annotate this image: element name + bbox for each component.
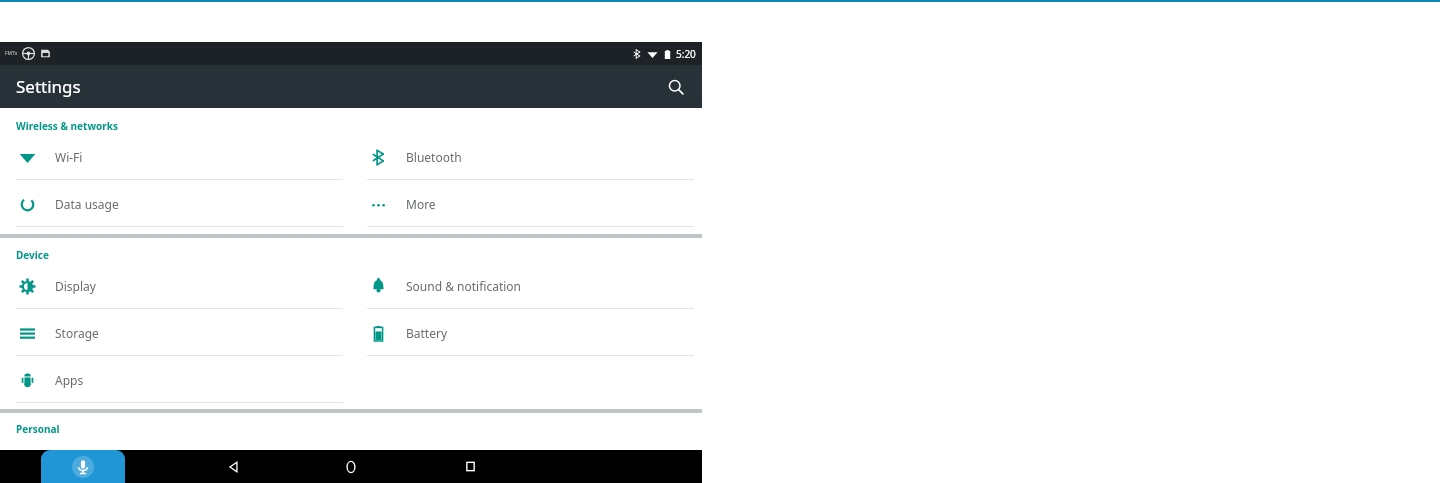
button[interactable]: Data usage	[0, 180, 351, 227]
staticText: Apps	[55, 372, 84, 388]
staticText: Storage	[55, 325, 99, 341]
button[interactable]: Apps	[0, 356, 351, 403]
button[interactable]: Search	[658, 69, 694, 105]
button[interactable]: Battery	[351, 309, 702, 356]
staticText: Battery	[406, 325, 448, 341]
button[interactable]: Storage	[0, 309, 351, 356]
staticText: Display	[55, 278, 96, 294]
button[interactable]: Wi-Fi	[0, 133, 351, 180]
staticText: Wi-Fi	[55, 149, 83, 165]
button[interactable]: Display	[0, 262, 351, 309]
staticText: 5:20	[676, 47, 696, 61]
staticText: More	[406, 196, 436, 212]
button[interactable]: Bluetooth	[351, 133, 702, 180]
staticText: Bluetooth	[406, 149, 462, 165]
staticText: Settings	[16, 75, 81, 98]
staticText: Data usage	[55, 196, 119, 212]
button[interactable]: Home	[331, 450, 371, 483]
staticText: Personal	[16, 422, 60, 436]
staticText: FMTx	[5, 50, 18, 57]
button[interactable]: Sound & notification	[351, 262, 702, 309]
button[interactable]: Recent apps	[450, 450, 490, 483]
button[interactable]: Back	[213, 450, 253, 483]
staticText: Sound & notification	[406, 278, 522, 294]
button[interactable]: Voice search	[41, 450, 125, 483]
button[interactable]: More	[351, 180, 702, 227]
staticText: Device	[16, 248, 49, 262]
staticText: Wireless & networks	[16, 119, 118, 133]
